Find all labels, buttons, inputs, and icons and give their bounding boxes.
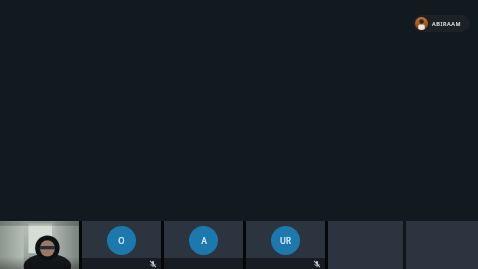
button[interactable]: O: [82, 221, 161, 269]
staticText: A: [201, 235, 207, 246]
button[interactable]: ABIRAAM: [413, 15, 470, 32]
button[interactable]: UR: [246, 221, 325, 269]
other: Microphone muted: [149, 260, 157, 268]
staticText: UR: [280, 235, 291, 246]
other: Microphone muted: [313, 260, 321, 268]
staticText: O: [118, 235, 125, 246]
button[interactable]: Your video: [0, 221, 79, 269]
staticText: ABIRAAM: [432, 20, 462, 27]
button[interactable]: A: [164, 221, 243, 269]
